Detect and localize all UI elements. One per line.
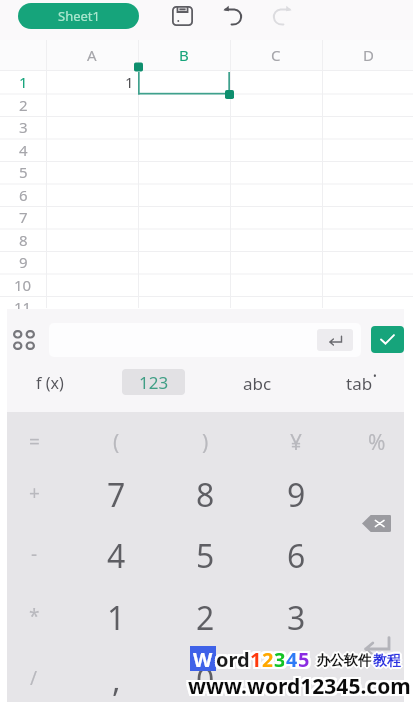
button[interactable]: tab [316, 357, 406, 409]
staticText: 1 [250, 646, 262, 673]
button[interactable]: Redo [262, 0, 302, 32]
staticText: % [368, 428, 386, 457]
button[interactable]: Save [162, 0, 202, 32]
button[interactable]: 5 [161, 519, 251, 580]
staticText: 2 [264, 644, 276, 671]
button[interactable]: % [341, 412, 404, 458]
button[interactable]: 7 [71, 458, 161, 519]
button[interactable]: 0 [161, 641, 251, 702]
staticText: 2 [260, 646, 272, 673]
staticText: 10 [14, 275, 32, 295]
button[interactable]: Undo [213, 0, 253, 32]
staticText: 3 [274, 648, 286, 675]
staticText: 4 [288, 646, 300, 673]
button[interactable]: ( [71, 412, 161, 458]
staticText: 11 [14, 297, 32, 317]
staticText: 6 [287, 534, 306, 574]
button[interactable]: ) [161, 412, 251, 458]
button[interactable]: 4 [71, 519, 161, 580]
button[interactable]: 9 [251, 458, 341, 519]
staticText: 2 [262, 648, 274, 675]
staticText: 5 [300, 648, 312, 675]
staticText: ord [218, 646, 252, 673]
staticText: 2 [196, 596, 215, 636]
staticText: 5 [296, 646, 308, 673]
staticText: 2 [264, 648, 276, 675]
staticText: - [31, 541, 38, 567]
button[interactable]: abc [212, 357, 302, 409]
staticText: 4 [284, 646, 296, 673]
staticText: www.word12345.com [190, 674, 413, 702]
button[interactable]: f (x) [5, 357, 95, 409]
staticText: 教程 [373, 650, 401, 668]
staticText: 3 [276, 648, 288, 675]
button[interactable]: = [7, 412, 71, 458]
staticText: 8 [19, 230, 28, 250]
staticText: 1 [107, 596, 126, 636]
staticText: 2 [19, 95, 28, 115]
staticText: 3 [287, 596, 306, 636]
staticText: ord [214, 646, 248, 673]
staticText: 办公软件 [316, 652, 372, 670]
button[interactable]: * [7, 580, 71, 641]
staticText: = [29, 429, 40, 455]
staticText: 3 [272, 648, 284, 675]
staticText: 9 [19, 252, 28, 272]
staticText: 教程 [372, 651, 400, 669]
button[interactable]: 123 [122, 369, 185, 395]
staticText: 5 [300, 646, 312, 673]
button[interactable]: + [7, 458, 71, 519]
staticText: 123 [139, 371, 169, 394]
staticText: B [179, 45, 189, 65]
staticText: 1 [19, 72, 28, 92]
staticText: ord [216, 644, 250, 671]
button[interactable]: 1 [71, 580, 161, 641]
staticText: 2 [262, 644, 274, 671]
staticText: 1 [248, 644, 260, 671]
button[interactable]: 6 [251, 519, 341, 580]
staticText: ord [216, 646, 250, 673]
staticText: 5 [298, 646, 310, 673]
button[interactable]: . [251, 641, 341, 702]
button[interactable]: ¥ [251, 412, 341, 458]
button[interactable]: Enter [317, 329, 353, 351]
staticText: Sheet1 [58, 7, 100, 25]
staticText: 1 [252, 648, 264, 675]
staticText: 4 [284, 648, 296, 675]
staticText: www.word12345.com [188, 672, 411, 701]
button[interactable]: Sheet1 [18, 3, 139, 29]
staticText: 1 [252, 644, 264, 671]
staticText: www.word12345.com [186, 674, 409, 702]
button[interactable]: 2 [161, 580, 251, 641]
staticText: D [363, 45, 374, 65]
button[interactable]: 3 [251, 580, 341, 641]
staticText: A [87, 45, 97, 65]
staticText: www.word12345.com [188, 674, 411, 702]
button[interactable]: Enter key [341, 580, 404, 702]
staticText: ord [218, 648, 252, 675]
staticText: 办公软件 [316, 650, 372, 668]
staticText: abc [243, 372, 272, 395]
button[interactable]: Functions [4, 320, 44, 360]
staticText: ¥ [290, 428, 303, 457]
staticText: 2 [260, 648, 272, 675]
staticText: 4 [286, 646, 298, 673]
staticText: , [112, 658, 121, 698]
button[interactable]: , [71, 641, 161, 702]
button[interactable]: 8 [161, 458, 251, 519]
staticText: 办公软件 [316, 654, 372, 672]
staticText: 5 [296, 648, 308, 675]
staticText: 4 [286, 644, 298, 671]
staticText: f (x) [36, 372, 64, 394]
staticText: 4 [288, 644, 300, 671]
button[interactable]: / [7, 641, 71, 702]
button[interactable]: Confirm [371, 326, 404, 353]
staticText: 3 [276, 644, 288, 671]
staticText: 3 [274, 644, 286, 671]
staticText: www.word12345.com [190, 670, 413, 699]
button[interactable] [49, 323, 361, 357]
button[interactable]: Backspace [341, 458, 404, 580]
staticText: 3 [274, 646, 286, 673]
staticText: 教程 [373, 654, 401, 672]
